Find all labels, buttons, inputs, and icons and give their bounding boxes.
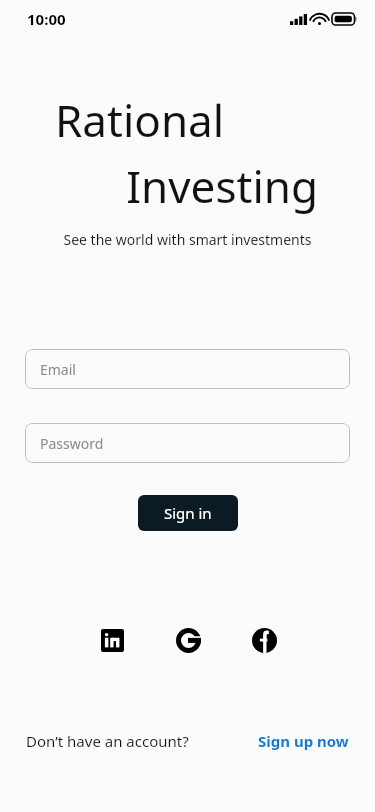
staticText: Don’t have an account? — [26, 731, 189, 751]
staticText: Email — [40, 360, 76, 379]
staticText: See the world with smart investments — [0, 230, 375, 249]
staticText: Password — [40, 434, 104, 453]
staticText: Sign in — [164, 503, 212, 523]
staticText: Investing — [0, 156, 318, 216]
button[interactable]: Sign in with Google — [168, 620, 208, 660]
button[interactable]: Sign in — [138, 495, 238, 531]
button[interactable]: Email — [25, 349, 350, 389]
staticText: 10:00 — [27, 9, 66, 29]
button[interactable]: Password — [25, 423, 350, 463]
button[interactable]: Sign in with Facebook — [244, 620, 284, 660]
staticText: Sign up now — [258, 731, 349, 751]
button[interactable]: Sign up now — [258, 731, 349, 751]
button[interactable]: Sign in with LinkedIn — [92, 620, 132, 660]
staticText: Rational — [55, 90, 375, 150]
